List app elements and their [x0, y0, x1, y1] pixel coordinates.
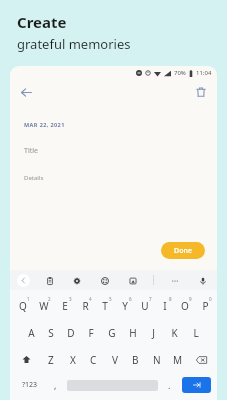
staticText: F [88, 326, 94, 340]
staticText: V [112, 353, 118, 367]
button[interactable]: L [185, 319, 206, 346]
button[interactable]: R [75, 292, 95, 319]
button[interactable]: Done [161, 242, 205, 259]
staticText: ?123 [22, 380, 38, 390]
staticText: A [28, 326, 35, 340]
button[interactable]: G [101, 319, 122, 346]
button[interactable]: Voice input [195, 273, 210, 288]
staticText: 0 [209, 296, 212, 302]
button[interactable]: More options [167, 273, 182, 288]
button[interactable]: Y [115, 292, 135, 319]
staticText: 4 [89, 296, 92, 302]
staticText: T [102, 299, 108, 313]
staticText: 11:04 [196, 69, 212, 77]
button[interactable]: S [41, 319, 61, 346]
button[interactable]: , [46, 373, 65, 397]
button[interactable]: Enter [182, 377, 211, 393]
button[interactable]: F [81, 319, 101, 346]
staticText: Y [122, 299, 128, 313]
staticText: U [141, 299, 149, 313]
staticText: B [132, 353, 139, 367]
staticText: G [108, 326, 116, 340]
button[interactable]: N [146, 346, 167, 373]
staticText: 1 [27, 296, 30, 302]
staticText: Details [24, 174, 44, 182]
button[interactable]: B [125, 346, 146, 373]
staticText: Z [48, 353, 54, 367]
button[interactable]: X [62, 346, 83, 373]
staticText: 5 [109, 296, 112, 302]
staticText: , [54, 379, 57, 391]
button[interactable]: Themes [97, 273, 112, 288]
staticText: H [129, 326, 137, 340]
staticText: R [82, 299, 89, 313]
button[interactable]: Expand toolbar [17, 274, 30, 287]
staticText: M [173, 353, 183, 367]
button[interactable]: Settings [69, 273, 84, 288]
staticText: Title [24, 146, 38, 156]
button[interactable]: A [21, 319, 41, 346]
button[interactable]: . [160, 373, 179, 397]
staticText: O [181, 299, 189, 313]
button[interactable]: H [122, 319, 143, 346]
staticText: Q [19, 299, 27, 313]
button[interactable]: M [167, 346, 188, 373]
staticText: X [70, 353, 76, 367]
staticText: MAR 22, 2021 [24, 121, 65, 128]
staticText: Done [174, 246, 192, 256]
staticText: N [153, 353, 161, 367]
staticText: C [90, 353, 97, 367]
button[interactable]: V [104, 346, 125, 373]
button[interactable]: O [175, 292, 195, 319]
staticText: K [171, 326, 178, 340]
button[interactable]: D [61, 319, 81, 346]
staticText: E [62, 299, 68, 313]
staticText: Create [17, 12, 67, 32]
button[interactable]: Z [40, 346, 62, 373]
staticText: grateful memories [17, 35, 131, 53]
staticText: L [193, 326, 199, 340]
button[interactable]: ?123 [13, 373, 46, 397]
staticText: J [152, 326, 155, 340]
staticText: D [67, 326, 75, 340]
button[interactable]: U [135, 292, 155, 319]
staticText: 8 [169, 296, 172, 302]
button[interactable]: Back [16, 82, 36, 102]
staticText: S [48, 326, 54, 340]
button[interactable]: P [195, 292, 215, 319]
button[interactable]: Backspace [188, 346, 215, 373]
button[interactable]: I [155, 292, 175, 319]
button[interactable]: J [143, 319, 164, 346]
staticText: 9 [189, 296, 192, 302]
button[interactable]: E [54, 292, 75, 319]
button[interactable]: Q [12, 292, 33, 319]
staticText: 3 [69, 296, 72, 302]
staticText: W [39, 299, 49, 313]
staticText: 70% [174, 69, 186, 77]
button[interactable]: W [33, 292, 54, 319]
staticText: I [163, 299, 167, 313]
button[interactable]: T [95, 292, 115, 319]
staticText: P [202, 299, 209, 313]
button[interactable]: K [164, 319, 185, 346]
staticText: 7 [149, 296, 152, 302]
staticText: . [168, 379, 171, 391]
button[interactable]: Clipboard [42, 273, 57, 288]
staticText: 6 [129, 296, 132, 302]
button[interactable]: Shift [12, 346, 40, 373]
button[interactable]: C [83, 346, 104, 373]
button[interactable]: Translate [125, 273, 140, 288]
staticText: 2 [48, 296, 51, 302]
button[interactable]: Delete [191, 82, 211, 102]
